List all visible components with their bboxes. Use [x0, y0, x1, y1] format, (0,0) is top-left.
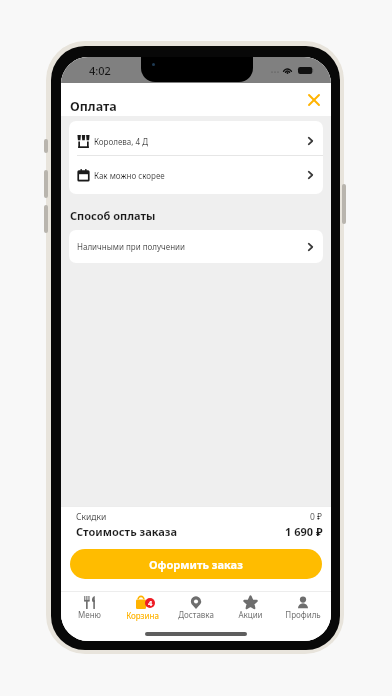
staticText: 0 ₽ — [310, 511, 323, 523]
button[interactable]: 4 — [116, 592, 168, 621]
staticText: Как можно скорее — [94, 170, 165, 181]
staticText: 4 — [148, 598, 153, 608]
staticText: 1 690 ₽ — [285, 524, 323, 539]
button[interactable]: Оформить заказ — [70, 549, 322, 579]
staticText: Доставка — [178, 609, 214, 620]
staticText: Акции — [238, 609, 263, 620]
staticText: Стоимость заказа — [76, 524, 178, 539]
staticText: Оформить заказ — [149, 557, 243, 572]
button[interactable]: Close — [304, 90, 324, 110]
button[interactable]: Доставка — [170, 592, 222, 620]
button[interactable]: Акции — [224, 592, 276, 620]
button[interactable]: Королева, 4 Д — [69, 121, 323, 155]
staticText: Наличными при получении — [77, 241, 186, 252]
staticText: Способ оплаты — [70, 208, 156, 223]
button[interactable]: Наличными при получении — [69, 230, 323, 263]
staticText: Меню — [78, 609, 101, 620]
staticText: Профиль — [285, 609, 321, 620]
staticText: Оплата — [70, 98, 117, 115]
staticText: Корзина — [126, 610, 159, 621]
staticText: 4:02 — [89, 63, 111, 78]
button[interactable]: Меню — [63, 592, 115, 620]
staticText: Скидки — [76, 511, 107, 523]
button[interactable]: Как можно скорее — [69, 156, 323, 194]
staticText: Королева, 4 Д — [94, 136, 148, 147]
button[interactable]: Профиль — [277, 592, 329, 620]
